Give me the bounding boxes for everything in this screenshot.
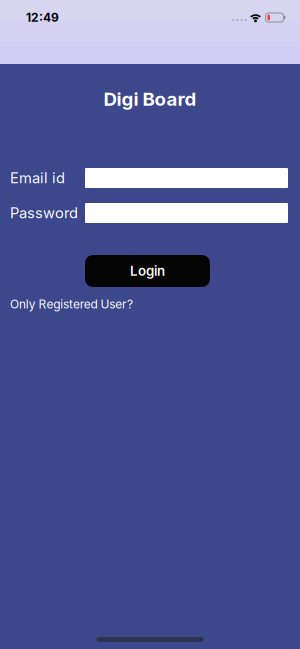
button[interactable]: Login [85,255,210,287]
staticText: Login [130,263,165,279]
staticText: Email id [10,169,65,187]
staticText: 12:49 [26,10,59,25]
staticText: Digi Board [103,88,196,110]
staticText: Password [10,204,78,222]
staticText: Only Registered User? [10,297,133,311]
button[interactable]: Only Registered User? [10,297,133,311]
